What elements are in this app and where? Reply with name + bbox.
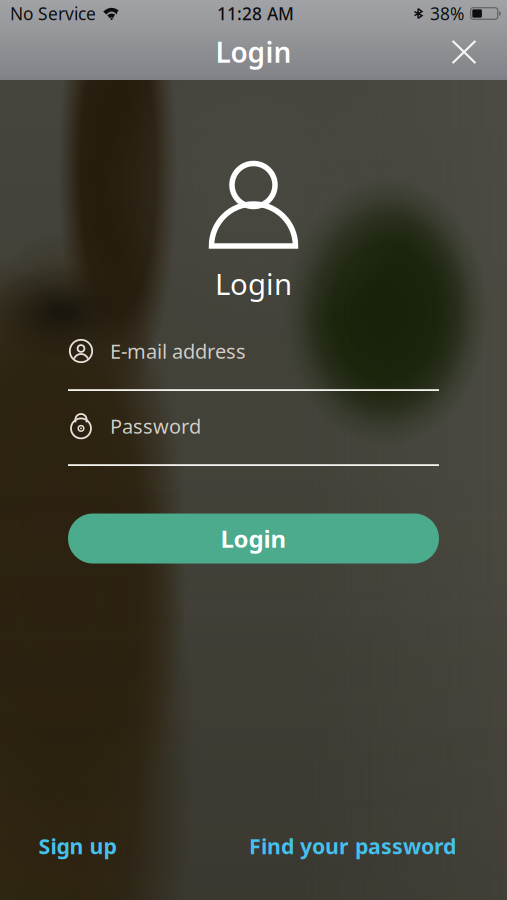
button[interactable]: Find your password	[241, 826, 464, 866]
staticText: Find your password	[249, 832, 456, 860]
staticText: Login	[220, 523, 286, 554]
staticText: Login	[215, 33, 291, 71]
staticText: Sign up	[38, 832, 116, 860]
button[interactable]: Sign up	[30, 826, 124, 866]
button[interactable]: Close	[436, 30, 492, 74]
staticText: Login	[215, 264, 292, 303]
staticText: E-mail address	[110, 338, 246, 364]
staticText: No Service	[10, 2, 96, 25]
button[interactable]: E-mail address	[68, 335, 439, 391]
staticText: 38%	[430, 2, 464, 25]
button[interactable]: Password	[68, 410, 439, 466]
staticText: 11:28 AM	[217, 2, 294, 25]
button[interactable]: Login	[68, 513, 439, 563]
staticText: Password	[110, 413, 201, 439]
